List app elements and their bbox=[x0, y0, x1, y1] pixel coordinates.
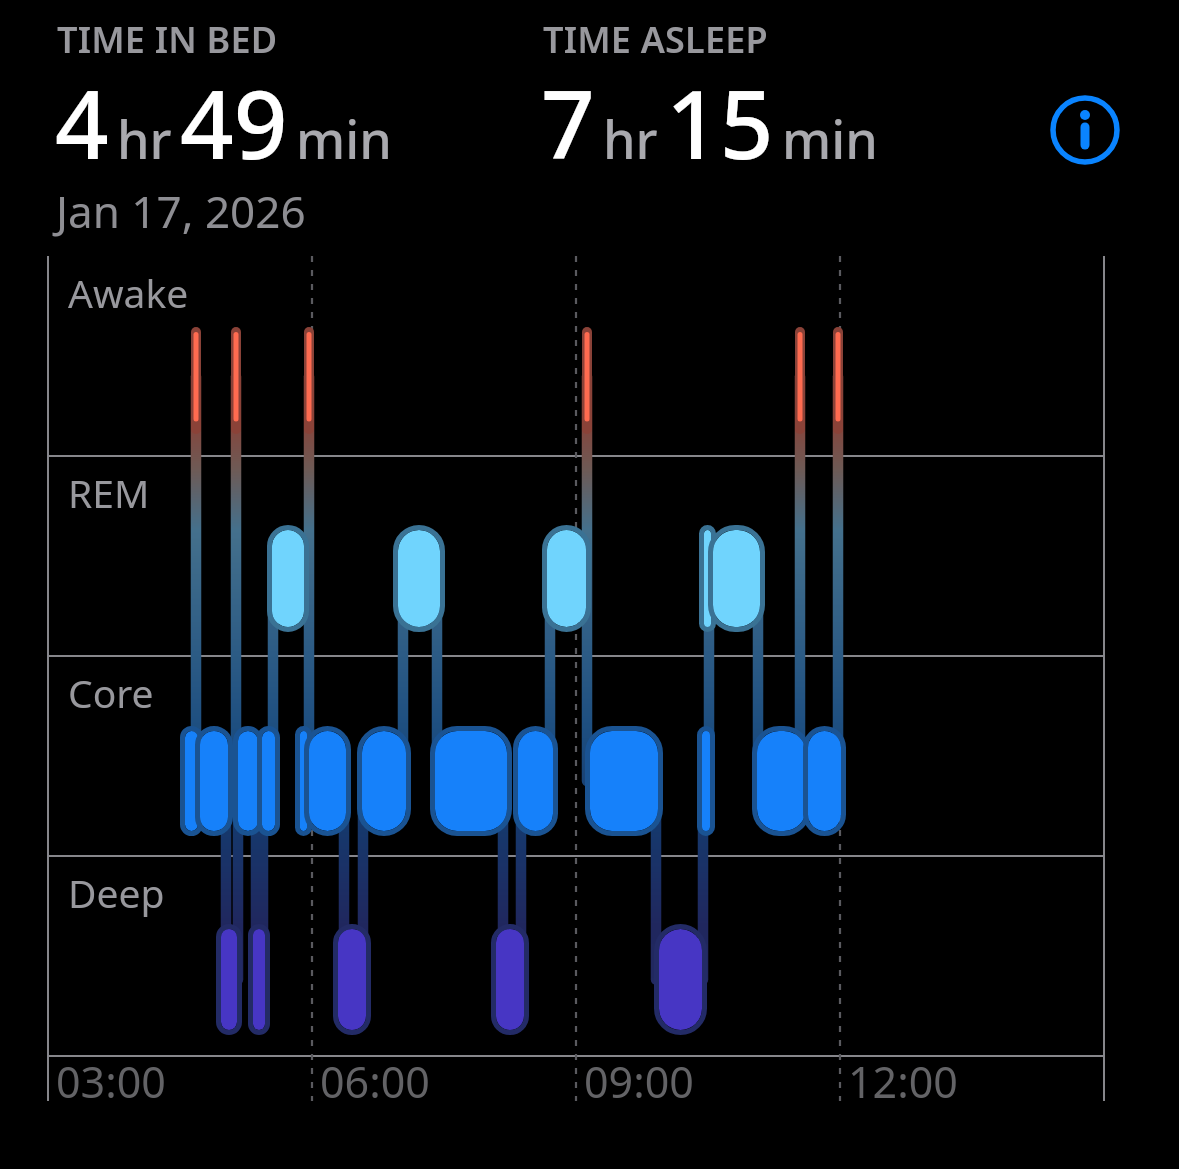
staticText: hr bbox=[117, 103, 172, 174]
staticText: 49 bbox=[180, 59, 288, 187]
staticText: Deep bbox=[68, 866, 165, 919]
staticText: Core bbox=[68, 666, 154, 719]
staticText: 06:00 bbox=[320, 1052, 430, 1111]
staticText: 09:00 bbox=[584, 1052, 694, 1111]
button[interactable] bbox=[1049, 94, 1121, 166]
staticText: Awake bbox=[68, 266, 189, 319]
staticText: 03:00 bbox=[56, 1052, 166, 1111]
staticText: TIME IN BED bbox=[57, 15, 278, 64]
staticText: hr bbox=[603, 103, 658, 174]
staticText: Jan 17, 2026 bbox=[56, 181, 306, 241]
staticText: 7 bbox=[541, 59, 595, 187]
staticText: 15 bbox=[666, 59, 774, 187]
staticText: 12:00 bbox=[848, 1052, 958, 1111]
staticText: REM bbox=[68, 466, 150, 519]
staticText: min bbox=[296, 103, 392, 174]
staticText: TIME ASLEEP bbox=[543, 15, 768, 64]
staticText: min bbox=[782, 103, 878, 174]
staticText: 4 bbox=[55, 59, 109, 187]
